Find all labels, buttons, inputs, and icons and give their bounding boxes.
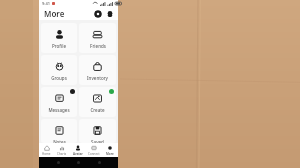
- staticText: Notes: [53, 139, 66, 143]
- button[interactable]: Notifications: [106, 10, 114, 18]
- staticText: Avatar: [73, 152, 83, 156]
- staticText: Inventory: [87, 75, 108, 81]
- button[interactable]: Create: [79, 87, 116, 117]
- staticText: Messages: [48, 107, 70, 113]
- button[interactable]: Home: [39, 143, 54, 157]
- staticText: Charts: [57, 152, 67, 156]
- button[interactable]: Saved: [79, 119, 116, 143]
- button[interactable]: Messages: [41, 87, 77, 117]
- button[interactable]: Charts: [54, 143, 70, 157]
- staticText: More: [44, 8, 65, 19]
- button[interactable]: Notes: [41, 119, 77, 143]
- staticText: Connect: [88, 152, 100, 156]
- staticText: Friends: [90, 43, 106, 49]
- staticText: 9:41: [42, 1, 50, 6]
- button[interactable]: Profile: [41, 23, 77, 53]
- staticText: Profile: [52, 43, 66, 49]
- button[interactable]: Connect: [86, 143, 102, 157]
- staticText: Saved: [91, 139, 104, 143]
- button[interactable]: Groups: [41, 55, 77, 85]
- button[interactable]: More: [102, 143, 118, 157]
- button[interactable]: Settings: [94, 10, 102, 18]
- staticText: More: [106, 152, 114, 156]
- button[interactable]: Friends: [79, 23, 116, 53]
- staticText: Home: [42, 152, 51, 156]
- button[interactable]: Avatar: [70, 143, 86, 157]
- staticText: Groups: [51, 75, 67, 81]
- staticText: Create: [90, 107, 105, 113]
- button[interactable]: Inventory: [79, 55, 116, 85]
